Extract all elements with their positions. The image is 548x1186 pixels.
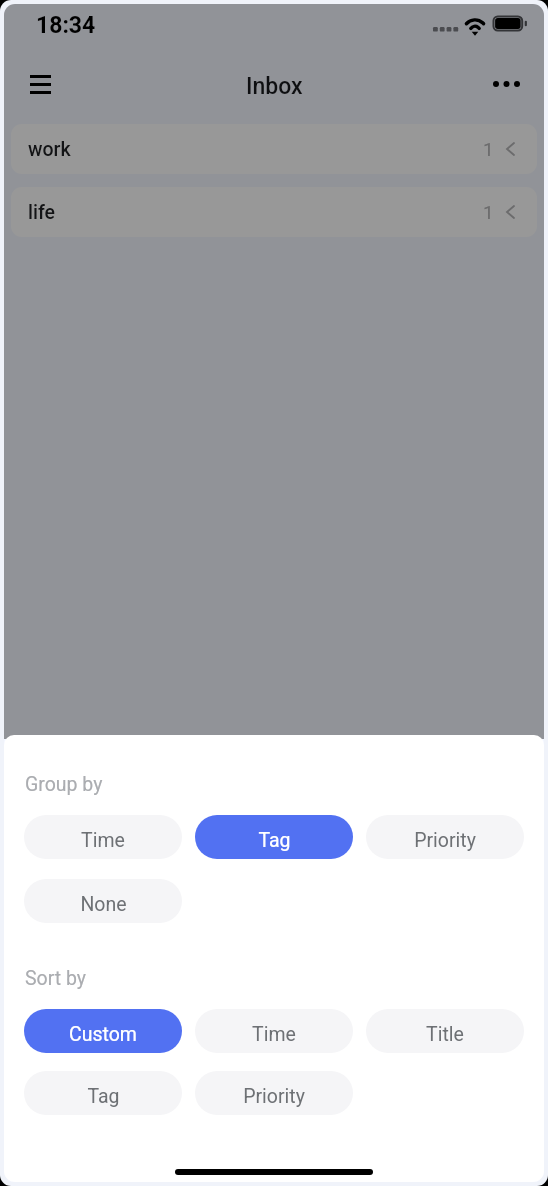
staticText: life bbox=[28, 201, 56, 224]
staticText: 1 bbox=[483, 201, 494, 223]
button[interactable]: Priority bbox=[366, 815, 524, 859]
staticText: Custom bbox=[69, 1023, 137, 1046]
staticText: Tag bbox=[87, 1085, 120, 1108]
staticText: Inbox bbox=[246, 73, 303, 100]
button[interactable]: Menu bbox=[14, 58, 66, 110]
button[interactable]: life bbox=[11, 187, 537, 237]
staticText: None bbox=[80, 893, 127, 916]
staticText: 18:34 bbox=[36, 12, 96, 39]
button[interactable]: None bbox=[24, 879, 182, 923]
staticText: Time bbox=[252, 1023, 296, 1046]
staticText: Time bbox=[81, 829, 125, 852]
button[interactable]: Priority bbox=[195, 1071, 353, 1115]
button[interactable]: Tag bbox=[195, 815, 353, 859]
staticText: Priority bbox=[243, 1085, 305, 1108]
staticText: Priority bbox=[414, 829, 476, 852]
button[interactable]: More options bbox=[480, 58, 532, 110]
button[interactable]: work bbox=[11, 124, 537, 174]
button[interactable]: Time bbox=[24, 815, 182, 859]
staticText: 1 bbox=[483, 138, 494, 160]
staticText: Tag bbox=[258, 829, 291, 852]
button[interactable]: Time bbox=[195, 1009, 353, 1053]
staticText: Group by bbox=[25, 773, 103, 796]
button[interactable]: Title bbox=[366, 1009, 524, 1053]
staticText: work bbox=[28, 138, 71, 161]
staticText: Title bbox=[426, 1023, 464, 1046]
button[interactable]: Tag bbox=[24, 1071, 182, 1115]
staticText: Sort by bbox=[25, 967, 87, 990]
button[interactable]: Custom bbox=[24, 1009, 182, 1053]
